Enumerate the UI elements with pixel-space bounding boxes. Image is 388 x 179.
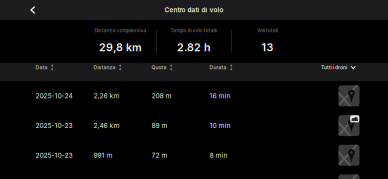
staticText: Tutti i droni	[321, 64, 347, 70]
staticText: Tempo di volo totale	[170, 28, 217, 33]
staticText: 8 min	[209, 151, 227, 159]
staticText: 72 m	[151, 151, 167, 159]
staticText: Distanza complessiva	[94, 28, 146, 33]
staticText: 208 m	[151, 92, 171, 100]
staticText: 16 min	[209, 92, 230, 100]
staticText: 89 m	[151, 121, 167, 130]
staticText: Durata	[209, 64, 226, 70]
staticText: 2,46 km	[93, 121, 119, 130]
button[interactable]: Durata	[209, 63, 267, 81]
staticText: 2025-10-23	[35, 151, 72, 159]
staticText: 2025-10-24	[35, 92, 72, 100]
button[interactable]: Distanza	[93, 63, 151, 81]
staticText: 991 m	[93, 151, 112, 159]
button[interactable]: 2025-10-23	[0, 111, 388, 140]
staticText: 2,26 km	[93, 92, 119, 100]
staticText: 2.82 h	[177, 41, 211, 54]
staticText: 2025-10-23	[35, 121, 72, 130]
button[interactable]: 2025-10-22	[0, 170, 388, 179]
staticText: Quota	[151, 64, 166, 70]
button[interactable]: Quota	[151, 63, 209, 81]
staticText: 10 min	[209, 121, 230, 130]
staticText: 13	[261, 41, 273, 54]
staticText: Centro dati di volo	[164, 6, 223, 14]
button[interactable]: Back	[26, 0, 40, 20]
button[interactable]: Data	[35, 63, 93, 81]
staticText: Voli totali	[257, 28, 278, 33]
button[interactable]: 2025-10-24	[0, 81, 388, 111]
button[interactable]: 2025-10-23	[0, 140, 388, 170]
staticText: 29,8 km	[99, 41, 142, 54]
staticText: Distanza	[93, 64, 115, 70]
staticText: Data	[35, 64, 47, 70]
button[interactable]: Tutti i droni	[321, 63, 356, 81]
